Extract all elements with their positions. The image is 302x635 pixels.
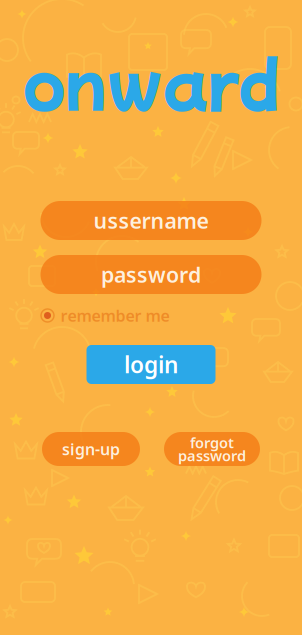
button[interactable]: forgot: [164, 432, 260, 466]
staticText: password: [101, 260, 201, 289]
staticText: forgot: [190, 433, 234, 452]
button[interactable]: ussername: [40, 201, 261, 240]
staticText: onward: [23, 36, 279, 124]
button[interactable]: remember me: [40, 307, 261, 324]
staticText: remember me: [60, 305, 169, 326]
staticText: sign-up: [62, 438, 120, 460]
staticText: password: [178, 446, 246, 465]
staticText: login: [124, 349, 178, 379]
button[interactable]: sign-up: [42, 432, 140, 466]
button[interactable]: login: [86, 345, 215, 384]
button[interactable]: password: [40, 255, 261, 294]
staticText: ussername: [93, 206, 208, 235]
